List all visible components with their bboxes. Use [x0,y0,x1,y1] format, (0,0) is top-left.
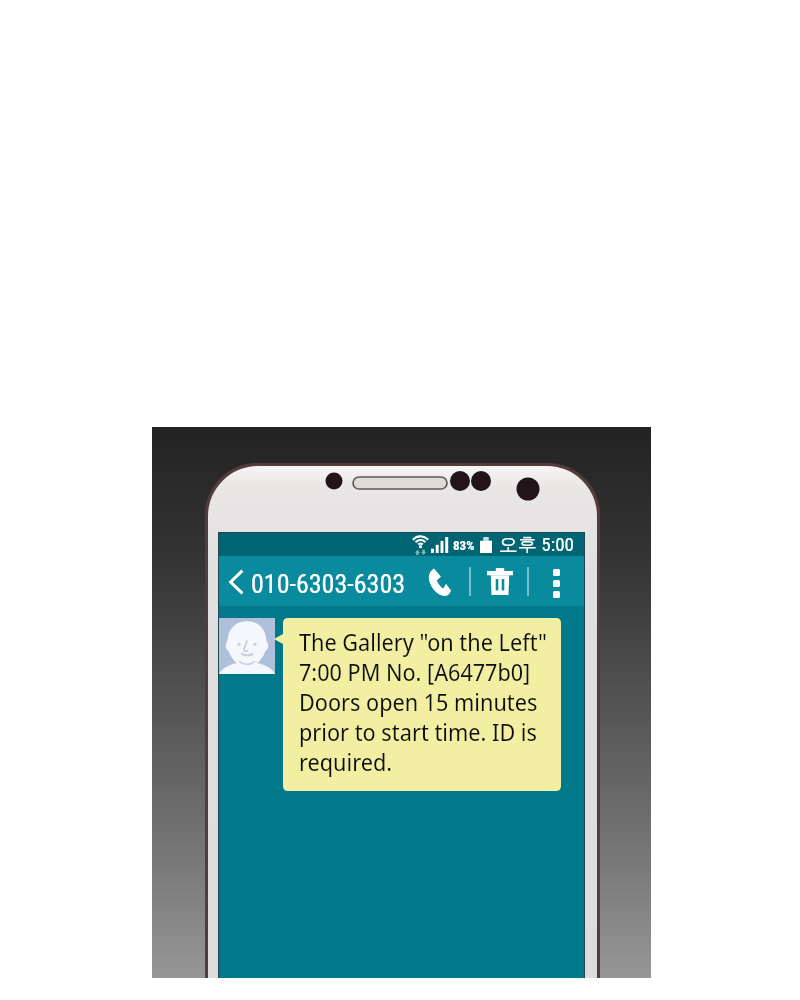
button[interactable]: Back [220,560,252,604]
staticText: 오후 5:00 [499,533,574,556]
staticText: The Gallery "on the Left" 7:00 PM No. [A… [299,626,547,777]
button[interactable]: More options [536,560,576,606]
button[interactable]: Call [416,559,462,605]
button[interactable]: Contact photo [219,618,275,674]
staticText: 010-6303-6303 [251,569,406,599]
staticText: 83% [453,538,475,553]
button[interactable]: Delete [477,558,523,604]
button[interactable]: The Gallery "on the Left" 7:00 PM No. [A… [274,618,561,791]
